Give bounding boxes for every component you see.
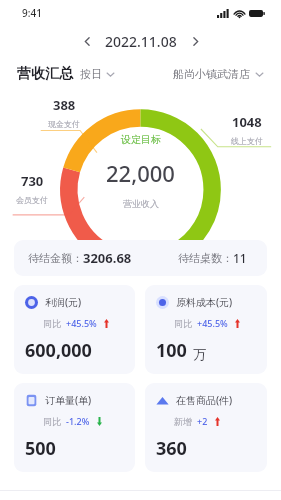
staticText: 待结金额： — [28, 251, 83, 265]
staticText: +2 — [197, 415, 208, 427]
staticText: 100 — [156, 338, 187, 363]
staticText: 新增 — [174, 416, 192, 427]
staticText: 线上支付 — [231, 136, 263, 146]
staticText: -1.2% — [66, 415, 90, 427]
staticText: +45.5% — [197, 317, 228, 329]
staticText: 待结桌数： — [178, 251, 233, 265]
staticText: 同比 — [43, 416, 61, 427]
button[interactable]: Previous day — [76, 30, 98, 52]
staticText: 万 — [193, 346, 206, 362]
staticText: 同比 — [174, 318, 192, 329]
staticText: +45.5% — [66, 317, 97, 329]
staticText: 会员支付 — [16, 195, 48, 205]
button[interactable]: 在售商品(件) — [145, 383, 267, 472]
staticText: 现金支付 — [48, 119, 80, 129]
staticText: 388 — [53, 96, 76, 114]
staticText: 1048 — [232, 113, 262, 131]
staticText: 原料成本(元) — [176, 295, 233, 309]
staticText: 11 — [233, 250, 247, 266]
staticText: 9:41 — [22, 6, 42, 20]
button[interactable]: 2022.11.08 — [105, 32, 177, 51]
staticText: 3206.68 — [83, 249, 132, 267]
staticText: 同比 — [43, 318, 61, 329]
staticText: 在售商品(件) — [176, 393, 233, 407]
button[interactable]: Next day — [184, 30, 206, 52]
staticText: 利润(元) — [45, 295, 82, 309]
staticText: 营业收入 — [123, 198, 159, 209]
staticText: 500 — [25, 436, 56, 461]
staticText: 船尚小镇武清店 — [173, 67, 250, 81]
staticText: 订单量(单) — [45, 393, 92, 407]
staticText: 按日 — [80, 67, 102, 81]
button[interactable]: 原料成本(元) — [145, 285, 267, 374]
staticText: 600,000 — [25, 338, 92, 363]
button[interactable]: 船尚小镇武清店 — [173, 67, 264, 81]
button[interactable]: 利润(元) — [14, 285, 135, 374]
button[interactable]: 待结金额： — [14, 240, 267, 276]
button[interactable]: 订单量(单) — [14, 383, 135, 472]
staticText: 营收汇总 — [17, 65, 73, 83]
button[interactable]: 设定目标 — [121, 133, 161, 146]
staticText: 730 — [21, 172, 44, 190]
button[interactable]: 按日 — [80, 67, 115, 81]
staticText: 22,000 — [106, 158, 175, 188]
staticText: 360 — [156, 436, 187, 461]
